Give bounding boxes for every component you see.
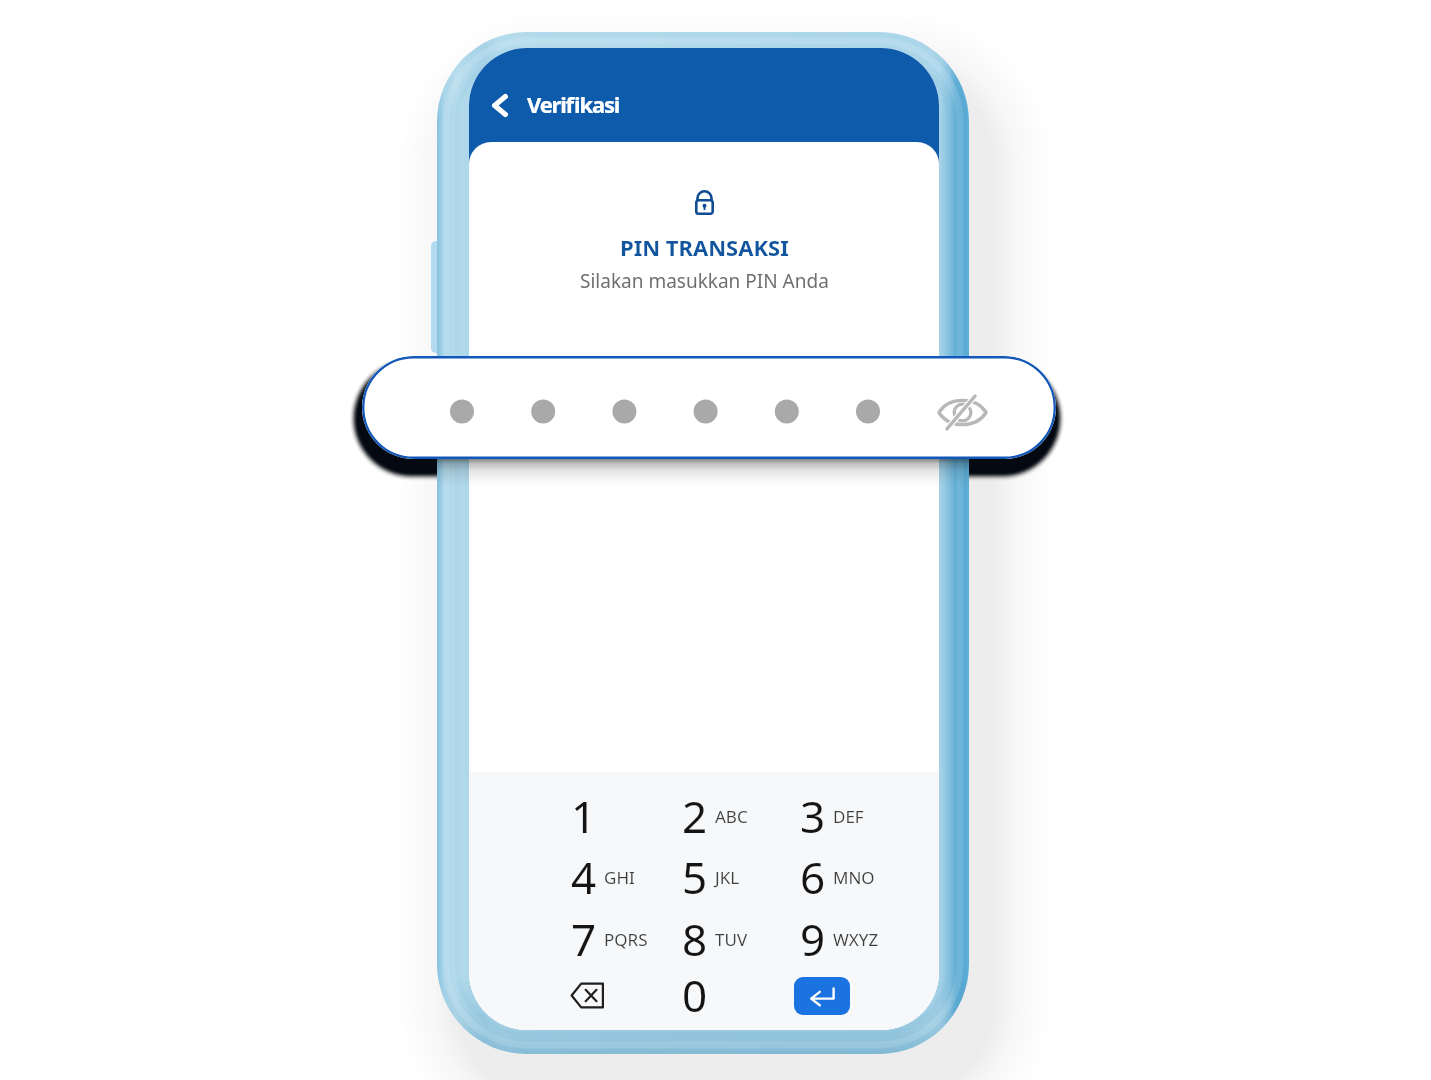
staticText: PIN TRANSAKSI xyxy=(620,232,789,262)
staticText: TUV xyxy=(715,928,748,951)
staticText: 0 xyxy=(682,965,708,1025)
button[interactable]: 9 xyxy=(768,909,884,970)
button[interactable]: Backspace xyxy=(529,965,645,1025)
button[interactable]: Enter xyxy=(794,977,850,1015)
button[interactable]: 0 xyxy=(650,965,766,1025)
staticText: 3 xyxy=(800,786,826,846)
button[interactable]: 5 xyxy=(650,847,766,908)
staticText: Silakan masukkan PIN Anda xyxy=(580,268,829,294)
button[interactable]: 1 xyxy=(539,786,655,847)
button[interactable]: 4 xyxy=(539,847,655,908)
staticText: GHI xyxy=(604,866,635,889)
staticText: MNO xyxy=(833,866,875,889)
staticText: Verifikasi xyxy=(527,89,620,119)
staticText: 8 xyxy=(682,909,708,969)
staticText: PQRS xyxy=(604,928,648,951)
button[interactable]: Toggle PIN visibility xyxy=(931,392,993,433)
staticText: WXYZ xyxy=(833,928,879,951)
staticText: 1 xyxy=(571,786,597,846)
staticText: 7 xyxy=(571,909,597,969)
staticText: 9 xyxy=(800,909,826,969)
staticText: JKL xyxy=(715,866,740,889)
staticText: ABC xyxy=(715,805,748,828)
staticText: 6 xyxy=(800,847,826,907)
button[interactable]: 6 xyxy=(768,847,884,908)
button[interactable]: 2 xyxy=(650,786,766,847)
button[interactable]: 3 xyxy=(768,786,884,847)
button[interactable]: 8 xyxy=(650,909,766,970)
button[interactable]: Back xyxy=(481,72,641,118)
staticText: 2 xyxy=(682,786,708,846)
staticText: 4 xyxy=(571,847,597,907)
staticText: DEF xyxy=(833,805,864,828)
staticText: 5 xyxy=(682,847,708,907)
button[interactable]: 7 xyxy=(539,909,655,970)
